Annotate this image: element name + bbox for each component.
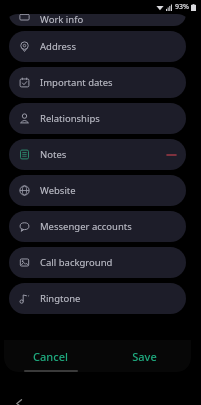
button[interactable]: Call background — [9, 247, 186, 278]
button[interactable]: Back — [8, 392, 30, 405]
button[interactable]: Cancel — [4, 340, 97, 372]
staticText: Call background — [40, 256, 113, 269]
staticText: Work info — [40, 14, 84, 25]
button[interactable]: Messenger accounts — [9, 211, 186, 242]
button[interactable]: Remove Notes — [161, 145, 181, 165]
button[interactable]: Address — [9, 31, 186, 62]
staticText: Save — [132, 349, 157, 364]
button[interactable]: Website — [9, 175, 186, 206]
staticText: 93% — [175, 2, 189, 12]
button[interactable]: Notes — [9, 139, 186, 170]
staticText: Address — [40, 40, 76, 53]
staticText: Website — [40, 184, 76, 197]
staticText: Ringtone — [40, 292, 81, 305]
staticText: Relationships — [40, 112, 100, 125]
button[interactable]: Save — [97, 340, 191, 372]
button[interactable]: Work info — [9, 14, 186, 26]
staticText: Notes — [40, 148, 67, 161]
button[interactable]: Relationships — [9, 103, 186, 134]
staticText: Important dates — [40, 76, 113, 89]
button[interactable]: Ringtone — [9, 283, 186, 314]
staticText: Cancel — [33, 349, 68, 364]
button[interactable]: Important dates — [9, 67, 186, 98]
staticText: Messenger accounts — [40, 220, 132, 233]
